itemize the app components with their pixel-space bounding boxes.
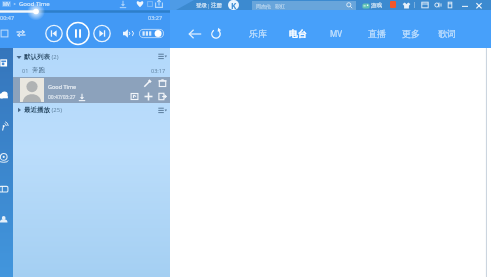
button[interactable]: MV	[129, 91, 140, 102]
button[interactable]: Minimize	[460, 1, 470, 11]
button[interactable]: 01	[13, 63, 170, 77]
button[interactable]: 游戏	[362, 1, 382, 10]
button[interactable]: 乐库	[248, 14, 268, 52]
staticText: 游戏	[371, 2, 382, 9]
staticText: 歌词	[438, 28, 456, 39]
button[interactable]: Favourite	[135, 0, 145, 9]
button[interactable]: MV	[328, 14, 344, 52]
button[interactable]: Share track	[157, 91, 168, 102]
staticText: 00:47/03:27	[48, 94, 76, 101]
staticText: 周杰伦	[256, 3, 271, 9]
button[interactable]: Close	[474, 1, 484, 11]
button[interactable]: Good Time	[13, 77, 170, 103]
staticText: 默认列表	[24, 53, 50, 61]
button[interactable]: Delete	[157, 78, 168, 89]
button[interactable]: Add	[143, 91, 154, 102]
staticText: (25)	[50, 106, 63, 114]
staticText: 登录	[196, 2, 207, 9]
button[interactable]: Skin	[402, 1, 411, 10]
button[interactable]: 电台	[288, 14, 308, 52]
button[interactable]: Download	[118, 0, 128, 9]
button[interactable]: 歌词	[437, 14, 457, 52]
staticText: (2)	[50, 53, 59, 61]
button[interactable]: 更多	[401, 14, 421, 52]
staticText: 电台	[289, 28, 307, 39]
button[interactable]: K	[228, 0, 239, 10]
staticText: Good Time	[19, 0, 50, 8]
staticText: 直播	[368, 28, 386, 39]
staticText: 彩虹	[275, 3, 285, 9]
staticText: MV	[3, 1, 10, 7]
button[interactable]: Playlist	[421, 1, 429, 9]
button[interactable]: Refresh	[209, 27, 223, 41]
button[interactable]: Notifications	[390, 1, 396, 8]
staticText: 最近播放	[24, 106, 50, 114]
staticText: 注册	[211, 2, 222, 9]
staticText: MV	[330, 28, 343, 39]
button[interactable]: 登录	[196, 1, 222, 9]
staticText: 03:17	[151, 67, 166, 74]
staticText: Good Time	[48, 83, 77, 90]
button[interactable]: Settings	[446, 1, 454, 9]
staticText: 更多	[402, 28, 420, 39]
staticText: 00:47	[0, 14, 15, 21]
button[interactable]: More	[145, 0, 155, 9]
button[interactable]: 直播	[367, 14, 387, 52]
staticText: 乐库	[249, 28, 267, 39]
button[interactable]: Lyrics	[142, 78, 153, 89]
staticText: |	[207, 2, 211, 9]
button[interactable]: Tools	[434, 1, 442, 9]
button[interactable]: Share	[154, 0, 164, 9]
button[interactable]: 默认列表	[13, 50, 170, 63]
staticText: 奔跑	[32, 66, 45, 74]
staticText: 01	[22, 67, 29, 74]
button[interactable]: 周杰伦	[252, 1, 356, 10]
button[interactable]: 最近播放	[13, 103, 170, 117]
button[interactable]: Back	[188, 27, 202, 41]
staticText: K	[231, 0, 237, 10]
staticText: 03:27	[148, 14, 163, 21]
